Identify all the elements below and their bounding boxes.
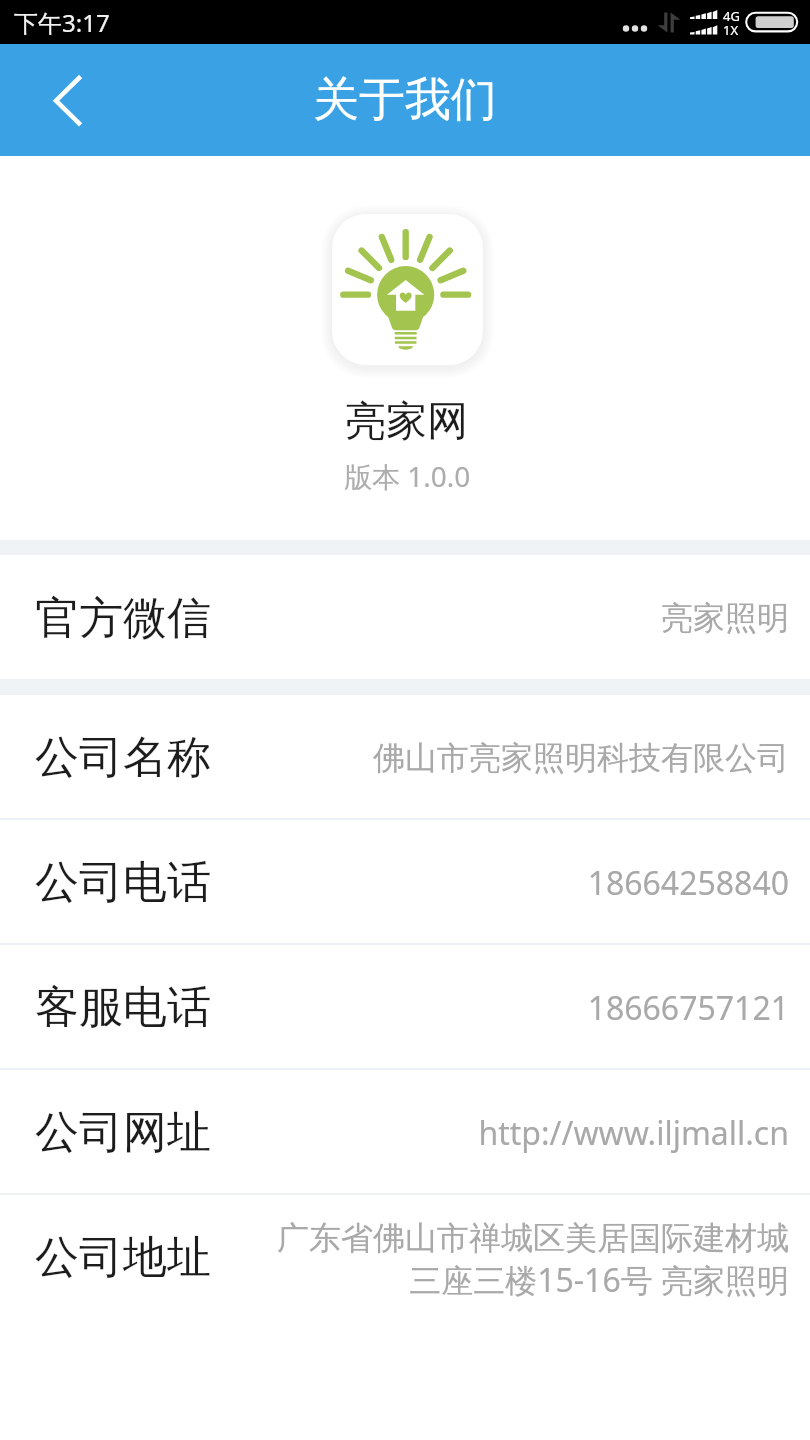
staticText: 佛山市亮家照明科技有限公司	[225, 738, 789, 778]
staticText: 客服电话	[35, 980, 211, 1035]
staticText: 官方微信	[35, 591, 211, 646]
staticText: 公司电话	[35, 855, 211, 910]
staticText: 亮家照明	[225, 598, 789, 638]
staticText: 1X	[723, 21, 739, 39]
button[interactable]: 公司网址	[0, 1070, 810, 1193]
button[interactable]: 公司地址	[0, 1195, 810, 1318]
staticText: 版本 1.0.0	[344, 457, 471, 495]
staticText: 下午3:17	[14, 6, 110, 39]
staticText: 公司名称	[35, 730, 211, 785]
button[interactable]: 官方微信	[0, 555, 810, 679]
staticText: 公司地址	[35, 1230, 211, 1285]
button[interactable]: 公司名称	[0, 695, 810, 818]
staticText: http://www.iljmall.cn	[225, 1111, 789, 1155]
staticText: 18664258840	[225, 861, 789, 905]
button[interactable]: 公司电话	[0, 820, 810, 943]
button[interactable]: 客服电话	[0, 945, 810, 1068]
button[interactable]: Back	[0, 44, 118, 156]
staticText: 广东省佛山市禅城区美居国际建材城 三座三楼15-16号 亮家照明	[225, 1218, 789, 1301]
staticText: 18666757121	[225, 986, 789, 1030]
staticText: 公司网址	[35, 1105, 211, 1160]
staticText: 亮家网	[345, 396, 468, 448]
staticText: 4G	[723, 7, 740, 25]
staticText: 关于我们	[313, 71, 497, 129]
